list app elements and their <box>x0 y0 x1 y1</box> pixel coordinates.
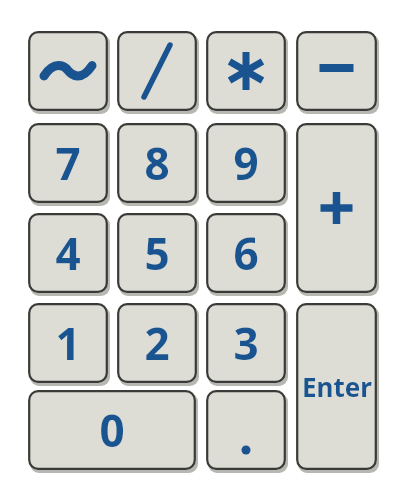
staticText: 8 <box>144 133 170 193</box>
staticText: 9 <box>233 133 259 193</box>
button[interactable]: 7 <box>28 123 108 203</box>
button[interactable]: 8 <box>117 123 197 203</box>
button[interactable]: Enter <box>296 303 377 470</box>
button[interactable]: Asterisk <box>206 31 286 111</box>
button[interactable]: Plus <box>296 123 377 293</box>
staticText: 0 <box>99 400 125 460</box>
staticText: 2 <box>144 313 170 373</box>
button[interactable]: Tilde <box>28 31 108 111</box>
staticText: 3 <box>233 313 259 373</box>
button[interactable]: 1 <box>28 303 108 383</box>
staticText: 7 <box>55 133 81 193</box>
button[interactable]: 0 <box>28 390 196 470</box>
button[interactable]: 2 <box>117 303 197 383</box>
button[interactable]: 6 <box>206 213 286 293</box>
button[interactable]: 4 <box>28 213 108 293</box>
staticText: 4 <box>55 223 81 283</box>
staticText: 6 <box>233 223 259 283</box>
button[interactable]: Minus <box>296 31 377 111</box>
button[interactable]: 5 <box>117 213 197 293</box>
button[interactable]: Divide <box>117 31 197 111</box>
button[interactable]: 9 <box>206 123 286 203</box>
button[interactable]: 3 <box>206 303 286 383</box>
staticText: 5 <box>144 223 170 283</box>
button[interactable]: Decimal point <box>206 390 286 470</box>
staticText: 1 <box>55 313 81 373</box>
staticText: Enter <box>302 369 372 404</box>
